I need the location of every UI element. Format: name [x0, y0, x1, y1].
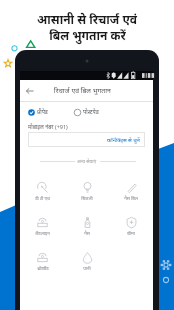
staticText: डी टी एच: [35, 195, 50, 201]
button[interactable]: प्रीपेड: [28, 106, 48, 118]
button[interactable]: डी टी एच: [20, 177, 65, 212]
staticText: कॉन्टैक्ट्स से चुनें: [107, 136, 140, 143]
button[interactable]: बीमा: [109, 212, 153, 247]
button[interactable]: पोस्टपेड: [74, 106, 99, 118]
staticText: पानी: [83, 265, 91, 271]
button[interactable]: कॉन्टैक्ट्स से चुनें: [28, 132, 145, 147]
button[interactable]: लैंडलाइन: [20, 212, 65, 247]
button[interactable]: पानी: [65, 247, 109, 282]
button[interactable]: Back: [23, 84, 36, 97]
staticText: ब्रॉडबैंड: [37, 265, 49, 271]
staticText: पोस्टपेड: [83, 108, 99, 116]
button[interactable]: गैस बिल: [109, 177, 153, 212]
staticText: प्रीपेड: [37, 108, 48, 116]
staticText: बिल भुगतान करें: [49, 27, 126, 43]
staticText: आसानी से रिचार्ज एवं: [37, 11, 137, 27]
staticText: लैंडलाइन: [35, 230, 50, 236]
staticText: गैस: [84, 230, 90, 236]
staticText: मोबाइल नंबर (+91): [28, 123, 68, 130]
staticText: अन्य सेवाएं: [77, 158, 97, 165]
staticText: बिजली: [81, 195, 93, 201]
button[interactable]: ब्रॉडबैंड: [20, 247, 65, 282]
button[interactable]: गैस: [65, 212, 109, 247]
button[interactable]: बिजली: [65, 177, 109, 212]
staticText: रिचार्ज एवं बिल भुगतान: [54, 86, 111, 95]
staticText: बीमा: [127, 230, 135, 236]
staticText: गैस बिल: [124, 195, 138, 201]
